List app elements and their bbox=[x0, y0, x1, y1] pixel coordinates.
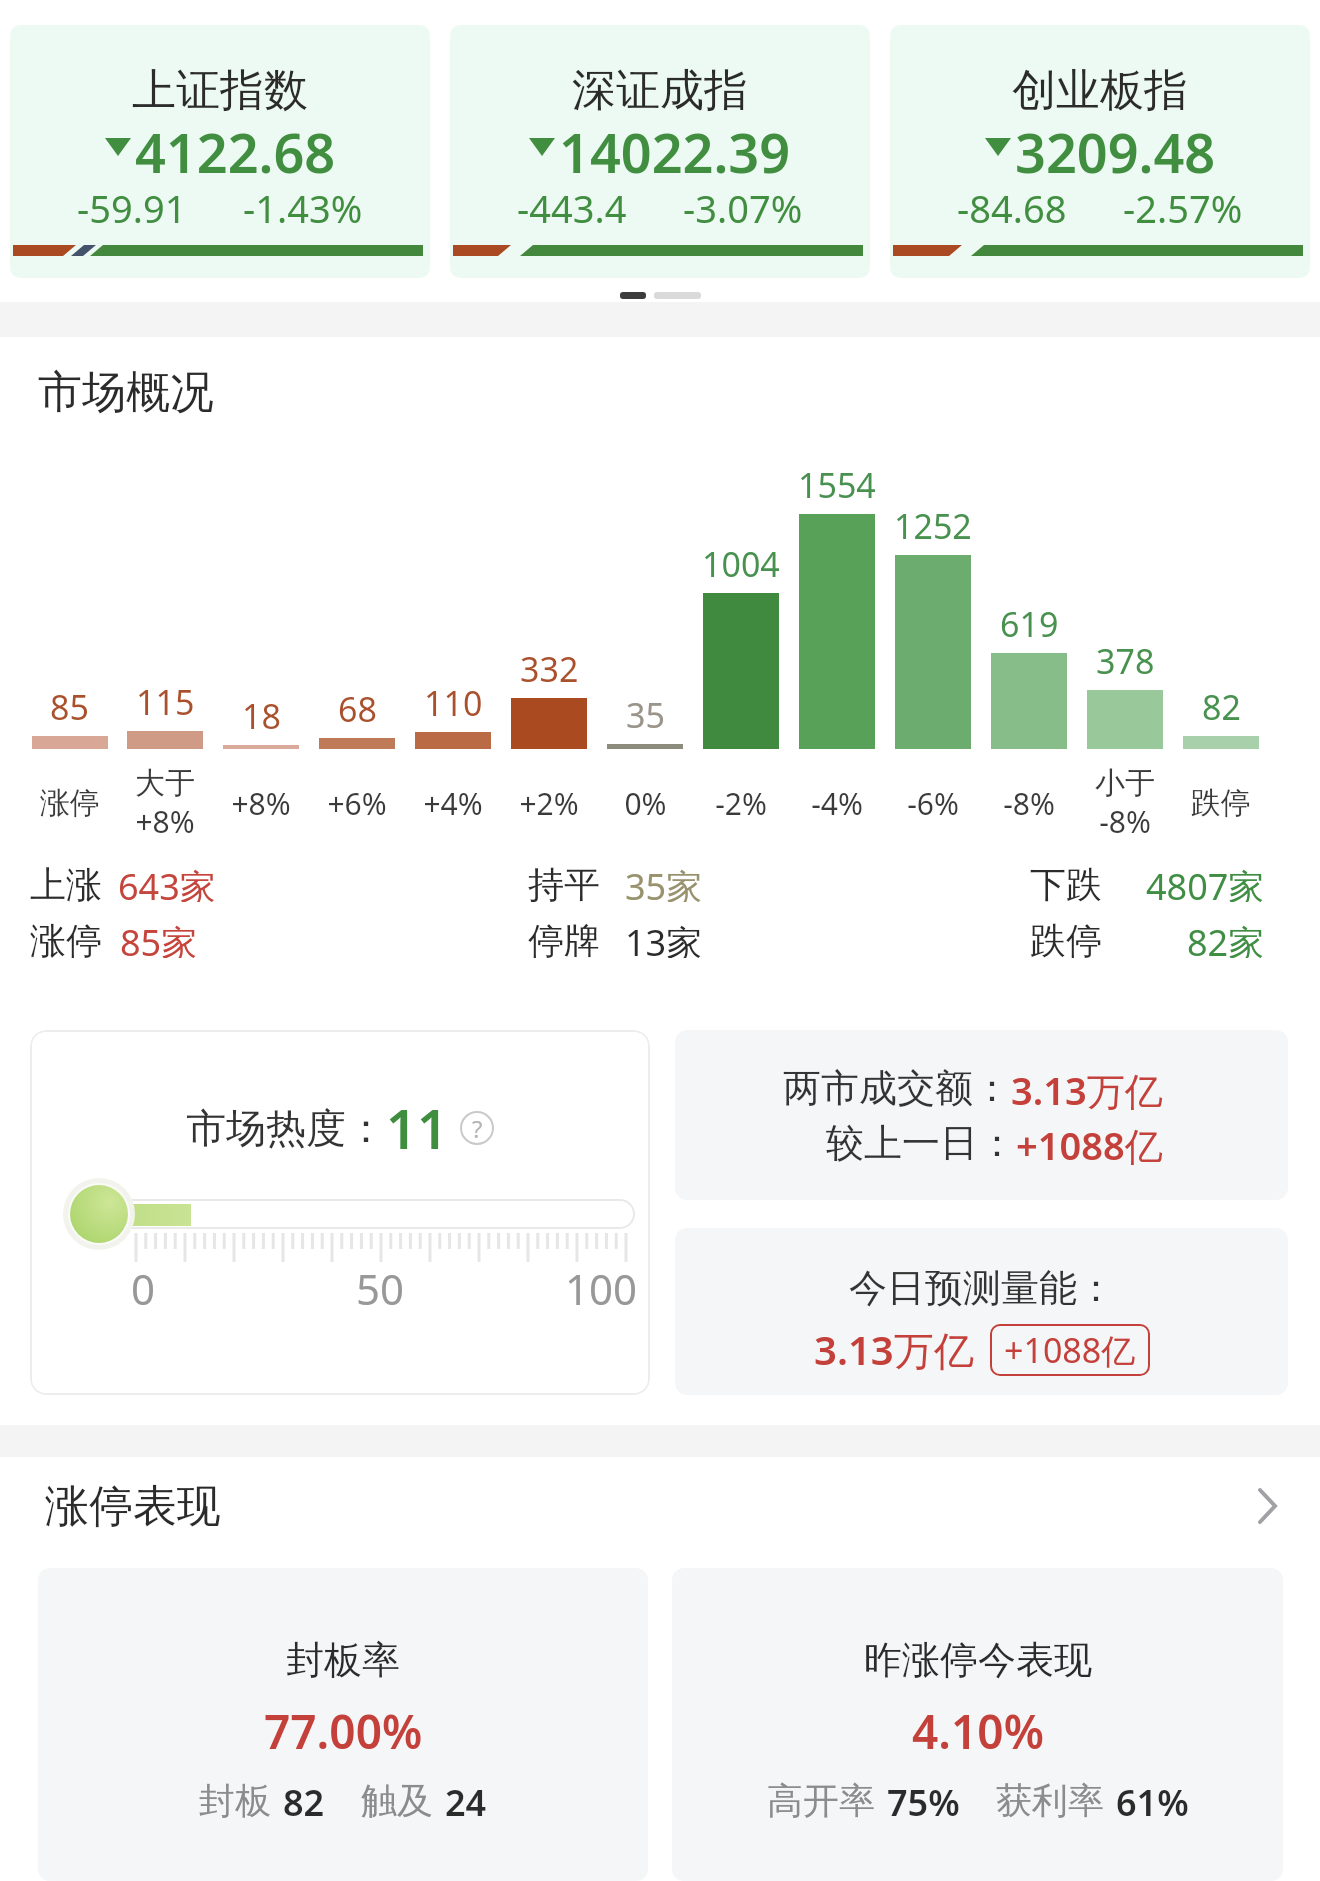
staticText: 82 bbox=[283, 1778, 325, 1820]
staticText: 35 bbox=[626, 692, 665, 738]
staticText: 85家 bbox=[120, 918, 198, 958]
staticText: 涨停表现 bbox=[45, 1479, 221, 1534]
staticText: 上证指数 bbox=[132, 63, 308, 115]
staticText: 涨停 bbox=[40, 784, 100, 822]
staticText: 68 bbox=[338, 686, 377, 732]
staticText: 0 bbox=[131, 1260, 156, 1317]
staticText: 停牌 bbox=[528, 918, 600, 958]
staticText: 13家 bbox=[625, 918, 703, 958]
staticText: -443.4 bbox=[517, 182, 627, 226]
staticText: 3.13万亿 bbox=[814, 1322, 974, 1377]
staticText: 市场概况 bbox=[38, 365, 214, 420]
staticText: 涨停 bbox=[30, 918, 102, 958]
staticText: 82家 bbox=[1187, 918, 1265, 958]
staticText: 大于 +8% bbox=[135, 764, 195, 842]
staticText: 50 bbox=[356, 1260, 405, 1317]
staticText: 上涨 bbox=[30, 862, 102, 902]
button[interactable]: 今日预测量能： bbox=[675, 1228, 1288, 1395]
staticText: 100 bbox=[565, 1260, 638, 1317]
staticText: 0% bbox=[624, 783, 667, 824]
staticText: 77.00% bbox=[264, 1700, 423, 1752]
staticText: -84.68 bbox=[957, 182, 1067, 226]
staticText: 85 bbox=[50, 684, 89, 730]
staticText: -2.57% bbox=[1123, 182, 1243, 226]
staticText: -59.91 bbox=[77, 182, 187, 226]
staticText: -2% bbox=[715, 783, 767, 824]
staticText: 创业板指 bbox=[1012, 63, 1188, 115]
staticText: 115 bbox=[136, 679, 195, 725]
staticText: 市场热度： bbox=[186, 1103, 386, 1153]
staticText: 75% bbox=[887, 1778, 960, 1820]
staticText: 昨涨停今表现 bbox=[864, 1636, 1092, 1680]
button[interactable]: 涨停表现 bbox=[45, 1477, 1278, 1535]
staticText: 4.10% bbox=[912, 1700, 1044, 1752]
staticText: 110 bbox=[424, 680, 483, 726]
staticText: 1252 bbox=[894, 503, 972, 549]
staticText: 11 bbox=[386, 1091, 448, 1165]
staticText: 封板率 bbox=[286, 1636, 400, 1680]
staticText: -3.07% bbox=[683, 182, 803, 226]
staticText: 3209.48 bbox=[1015, 115, 1216, 177]
staticText: 378 bbox=[1096, 638, 1155, 684]
staticText: 4807家 bbox=[1146, 862, 1265, 902]
staticText: 跌停 bbox=[1030, 918, 1102, 958]
staticText: 小于 -8% bbox=[1095, 764, 1155, 842]
staticText: -1.43% bbox=[243, 182, 363, 226]
staticText: 14022.39 bbox=[559, 115, 791, 177]
button[interactable]: 两市成交额： bbox=[675, 1030, 1288, 1200]
staticText: 4122.68 bbox=[135, 115, 336, 177]
button[interactable]: 深证成指 bbox=[450, 25, 870, 278]
button[interactable]: 上证指数 bbox=[10, 25, 430, 278]
staticText: 643家 bbox=[118, 862, 216, 902]
staticText: +1088亿 bbox=[1016, 1119, 1163, 1165]
staticText: 82 bbox=[1202, 684, 1241, 730]
staticText: ? bbox=[472, 1112, 483, 1145]
button[interactable]: 创业板指 bbox=[890, 25, 1310, 278]
button[interactable]: 昨涨停今表现 bbox=[672, 1568, 1283, 1881]
staticText: 跌停 bbox=[1191, 784, 1251, 822]
staticText: 持平 bbox=[528, 862, 600, 902]
staticText: +1088亿 bbox=[1004, 1327, 1136, 1373]
staticText: 24 bbox=[445, 1778, 487, 1820]
staticText: +6% bbox=[327, 783, 387, 824]
staticText: 61% bbox=[1116, 1778, 1189, 1820]
staticText: 封板 bbox=[199, 1778, 271, 1820]
staticText: 1004 bbox=[702, 541, 780, 587]
staticText: 今日预测量能： bbox=[849, 1264, 1115, 1310]
staticText: 下跌 bbox=[1030, 862, 1102, 902]
staticText: 332 bbox=[520, 646, 579, 692]
button[interactable]: 市场热度： bbox=[30, 1030, 650, 1395]
staticText: -8% bbox=[1003, 783, 1055, 824]
staticText: 获利率 bbox=[996, 1778, 1104, 1820]
staticText: 35家 bbox=[625, 862, 703, 902]
staticText: 18 bbox=[242, 693, 281, 739]
staticText: +2% bbox=[519, 783, 579, 824]
staticText: 高开率 bbox=[767, 1778, 875, 1820]
staticText: 深证成指 bbox=[572, 63, 748, 115]
staticText: +8% bbox=[231, 783, 291, 824]
button[interactable]: 封板率 bbox=[38, 1568, 648, 1881]
staticText: +4% bbox=[423, 783, 483, 824]
staticText: 两市成交额： bbox=[783, 1064, 1011, 1110]
staticText: -6% bbox=[907, 783, 959, 824]
staticText: 3.13万亿 bbox=[1011, 1064, 1163, 1110]
staticText: -4% bbox=[811, 783, 863, 824]
staticText: 触及 bbox=[361, 1778, 433, 1820]
staticText: 较上一日： bbox=[826, 1119, 1016, 1165]
staticText: 619 bbox=[1000, 601, 1059, 647]
staticText: 1554 bbox=[798, 462, 876, 508]
